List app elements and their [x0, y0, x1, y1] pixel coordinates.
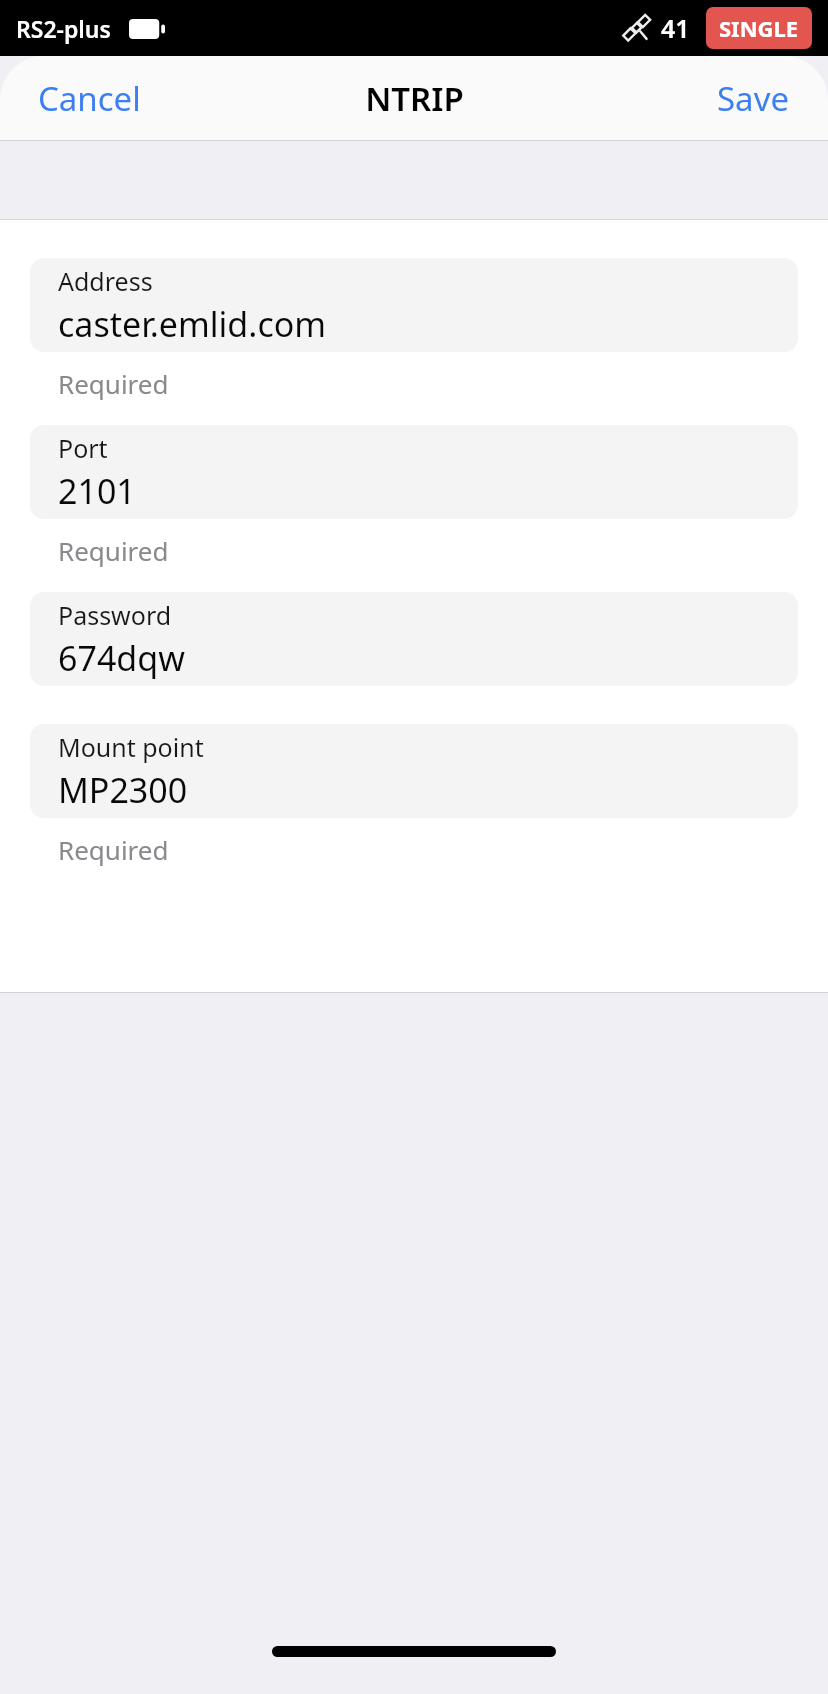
staticText: Save	[717, 76, 790, 121]
staticText: NTRIP	[365, 76, 464, 121]
staticText: Address	[58, 264, 153, 298]
button[interactable]: SINGLE	[706, 7, 812, 49]
staticText: 674dqw	[58, 635, 185, 681]
staticText: caster.emlid.com	[58, 301, 327, 347]
other: Satellites in view	[621, 12, 653, 44]
other: Battery level	[129, 19, 165, 39]
button[interactable]: Password	[30, 592, 798, 686]
staticText: SINGLE	[719, 13, 799, 43]
staticText: Password	[58, 598, 172, 632]
staticText: 2101	[58, 468, 136, 514]
staticText: Port	[58, 431, 108, 465]
staticText: Cancel	[38, 76, 141, 121]
button[interactable]: Mount point	[30, 724, 798, 818]
staticText: Required	[58, 832, 169, 867]
staticText: MP2300	[58, 767, 188, 813]
staticText: Required	[58, 366, 169, 401]
staticText: Required	[58, 533, 169, 568]
button[interactable]: Address	[30, 258, 798, 352]
staticText: 41	[661, 11, 690, 45]
button[interactable]: Save	[679, 60, 828, 137]
staticText: RS2-plus	[16, 13, 111, 44]
button[interactable]: Cancel	[0, 60, 179, 137]
button[interactable]: Port	[30, 425, 798, 519]
staticText: Mount point	[58, 730, 204, 764]
